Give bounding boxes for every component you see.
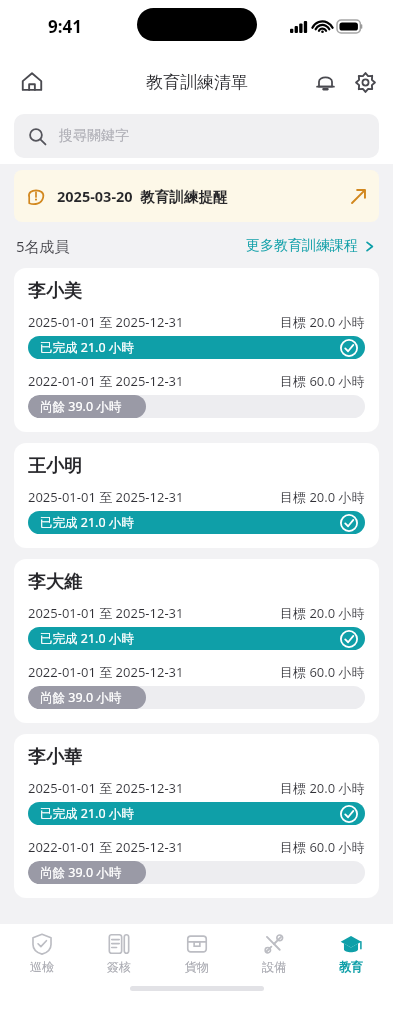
button[interactable]: 貨物 [162, 929, 232, 978]
staticText: 目標 60.0 小時 [280, 372, 365, 390]
staticText: 2022-01-01 至 2025-12-31 [28, 372, 184, 390]
staticText: 李小華 [28, 746, 82, 769]
staticText: 尚餘 39.0 小時 [40, 689, 122, 706]
button[interactable]: 設備 [239, 929, 309, 978]
staticText: 2025-01-01 至 2025-12-31 [28, 313, 184, 331]
button[interactable]: Notifications [305, 62, 345, 102]
button[interactable]: 巡檢 [7, 929, 77, 978]
button[interactable]: 李小華 [14, 734, 379, 898]
button[interactable]: 2025-03-20 教育訓練提醒 [14, 170, 379, 222]
staticText: 更多教育訓練課程 [246, 237, 358, 255]
button[interactable]: 更多教育訓練課程 [244, 234, 377, 258]
staticText: 目標 20.0 小時 [280, 604, 365, 622]
staticText: 教育訓練清單 [146, 72, 248, 93]
staticText: 李大維 [28, 571, 82, 594]
staticText: 李小美 [28, 280, 82, 303]
staticText: 巡檢 [30, 959, 54, 974]
staticText: 教育 [339, 959, 363, 974]
staticText: 目標 20.0 小時 [280, 313, 365, 331]
staticText: 尚餘 39.0 小時 [40, 398, 122, 415]
staticText: 2025-01-01 至 2025-12-31 [28, 488, 184, 506]
staticText: 設備 [262, 959, 286, 974]
button[interactable]: 簽核 [84, 929, 154, 978]
button[interactable]: 教育 [316, 929, 386, 978]
button[interactable]: 李小美 [14, 268, 379, 432]
staticText: 尚餘 39.0 小時 [40, 864, 122, 881]
staticText: 2025-01-01 至 2025-12-31 [28, 779, 184, 797]
staticText: 簽核 [107, 959, 131, 974]
staticText: 目標 60.0 小時 [280, 838, 365, 856]
staticText: 9:41 [48, 15, 82, 38]
staticText: 貨物 [185, 959, 209, 974]
staticText: 已完成 21.0 小時 [40, 630, 134, 647]
staticText: 已完成 21.0 小時 [40, 805, 134, 822]
staticText: 5名成員 [16, 236, 70, 256]
staticText: 2022-01-01 至 2025-12-31 [28, 663, 184, 681]
staticText: 王小明 [28, 455, 82, 478]
staticText: 目標 60.0 小時 [280, 663, 365, 681]
staticText: 已完成 21.0 小時 [40, 514, 134, 531]
staticText: 目標 20.0 小時 [280, 779, 365, 797]
button[interactable]: Home [12, 62, 52, 102]
button[interactable]: Settings [345, 62, 385, 102]
staticText: 目標 20.0 小時 [280, 488, 365, 506]
staticText: 搜尋關鍵字 [59, 127, 129, 145]
staticText: 2022-01-01 至 2025-12-31 [28, 838, 184, 856]
staticText: 2025-01-01 至 2025-12-31 [28, 604, 184, 622]
staticText: 2025-03-20 教育訓練提醒 [57, 186, 228, 206]
button[interactable]: 搜尋關鍵字 [14, 114, 379, 158]
staticText: 已完成 21.0 小時 [40, 339, 134, 356]
button[interactable]: 李大維 [14, 559, 379, 723]
button[interactable]: 王小明 [14, 443, 379, 548]
